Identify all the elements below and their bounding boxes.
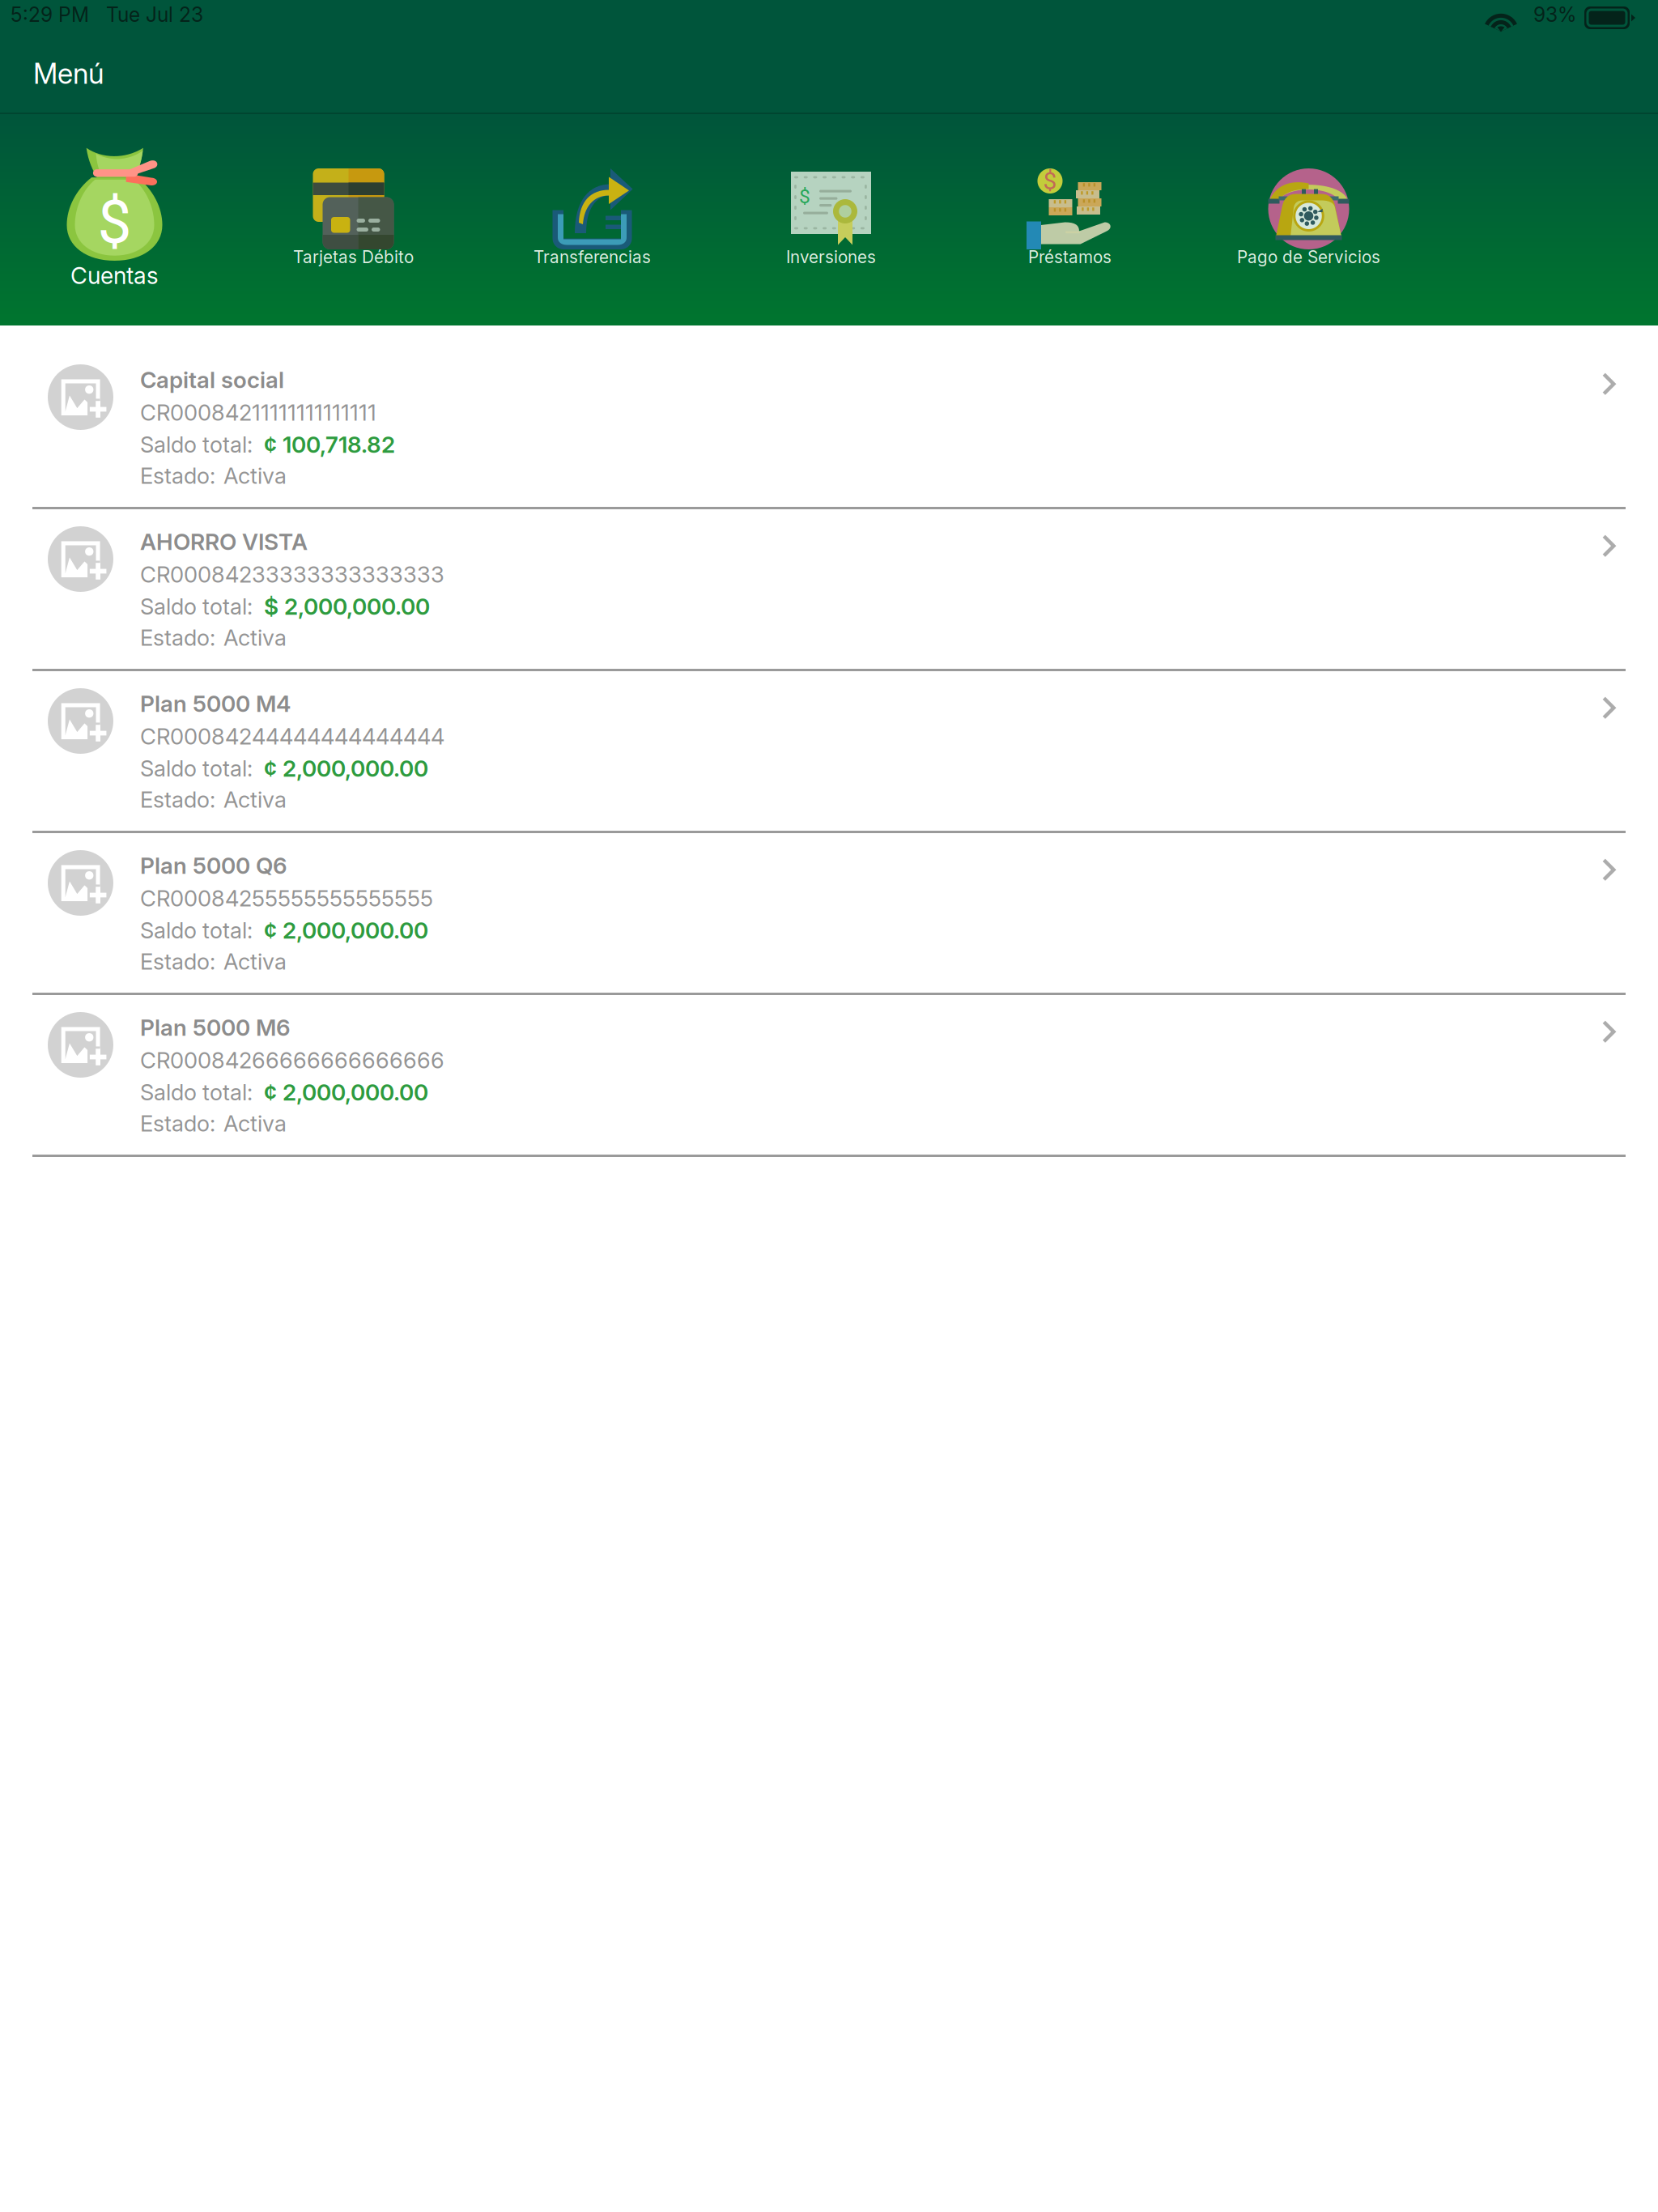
staticText: Transferencias: [534, 247, 651, 267]
button[interactable]: Pago de Servicios: [1189, 113, 1428, 324]
button[interactable]: $: [950, 113, 1189, 324]
staticText: Saldo total:: [140, 917, 253, 944]
staticText: Activa: [223, 1110, 287, 1137]
staticText: ¢ 100,718.82: [264, 431, 395, 458]
staticText: CR00084233333333333333: [140, 561, 444, 588]
button[interactable]: Plan 5000 M6: [0, 993, 1658, 1155]
staticText: Estado:: [140, 624, 215, 651]
staticText: Capital social: [140, 366, 284, 393]
staticText: Saldo total:: [140, 755, 253, 782]
staticText: Estado:: [140, 948, 215, 975]
staticText: ¢ 2,000,000.00: [264, 755, 428, 782]
staticText: Plan 5000 M6: [140, 1014, 291, 1041]
staticText: $: [98, 187, 132, 258]
button[interactable]: $: [712, 113, 950, 324]
staticText: Estado:: [140, 786, 215, 813]
staticText: Inversiones: [786, 247, 876, 267]
button[interactable]: Capital social: [0, 345, 1658, 507]
staticText: CR00084244444444444444: [140, 723, 444, 750]
staticText: Activa: [223, 624, 287, 651]
staticText: Activa: [223, 786, 287, 813]
staticText: Saldo total:: [140, 1079, 253, 1106]
button[interactable]: Plan 5000 Q6: [0, 831, 1658, 993]
button[interactable]: Menú: [21, 45, 142, 99]
staticText: 5:29 PM: [11, 2, 89, 27]
staticText: Estado:: [140, 1110, 215, 1137]
staticText: $ 2,000,000.00: [264, 593, 430, 620]
staticText: Saldo total:: [140, 593, 253, 620]
staticText: Activa: [223, 462, 287, 489]
staticText: Activa: [223, 948, 287, 975]
button[interactable]: Transferencias: [473, 113, 712, 324]
staticText: CR00084266666666666666: [140, 1047, 444, 1074]
staticText: CR00084255555555555555: [140, 885, 433, 912]
staticText: Pago de Servicios: [1237, 247, 1380, 267]
button[interactable]: Tarjetas Débito: [234, 113, 473, 324]
staticText: ¢ 2,000,000.00: [264, 917, 428, 944]
button[interactable]: Plan 5000 M4: [0, 669, 1658, 831]
staticText: 93%: [1533, 2, 1576, 27]
staticText: ¢ 2,000,000.00: [264, 1078, 428, 1106]
staticText: Tarjetas Débito: [293, 247, 414, 267]
button[interactable]: $: [0, 113, 234, 324]
staticText: Estado:: [140, 462, 215, 489]
button[interactable]: AHORRO VISTA: [0, 507, 1658, 669]
staticText: CR00084211111111111111: [140, 399, 376, 426]
staticText: $: [799, 185, 810, 208]
staticText: Menú: [33, 57, 104, 91]
staticText: Préstamos: [1028, 247, 1112, 267]
staticText: Plan 5000 M4: [140, 690, 291, 717]
staticText: Saldo total:: [140, 431, 253, 458]
staticText: Plan 5000 Q6: [140, 852, 287, 879]
staticText: Cuentas: [70, 262, 159, 290]
staticText: AHORRO VISTA: [140, 528, 308, 555]
staticText: Tue Jul 23: [106, 2, 203, 27]
staticText: $: [1043, 167, 1057, 195]
